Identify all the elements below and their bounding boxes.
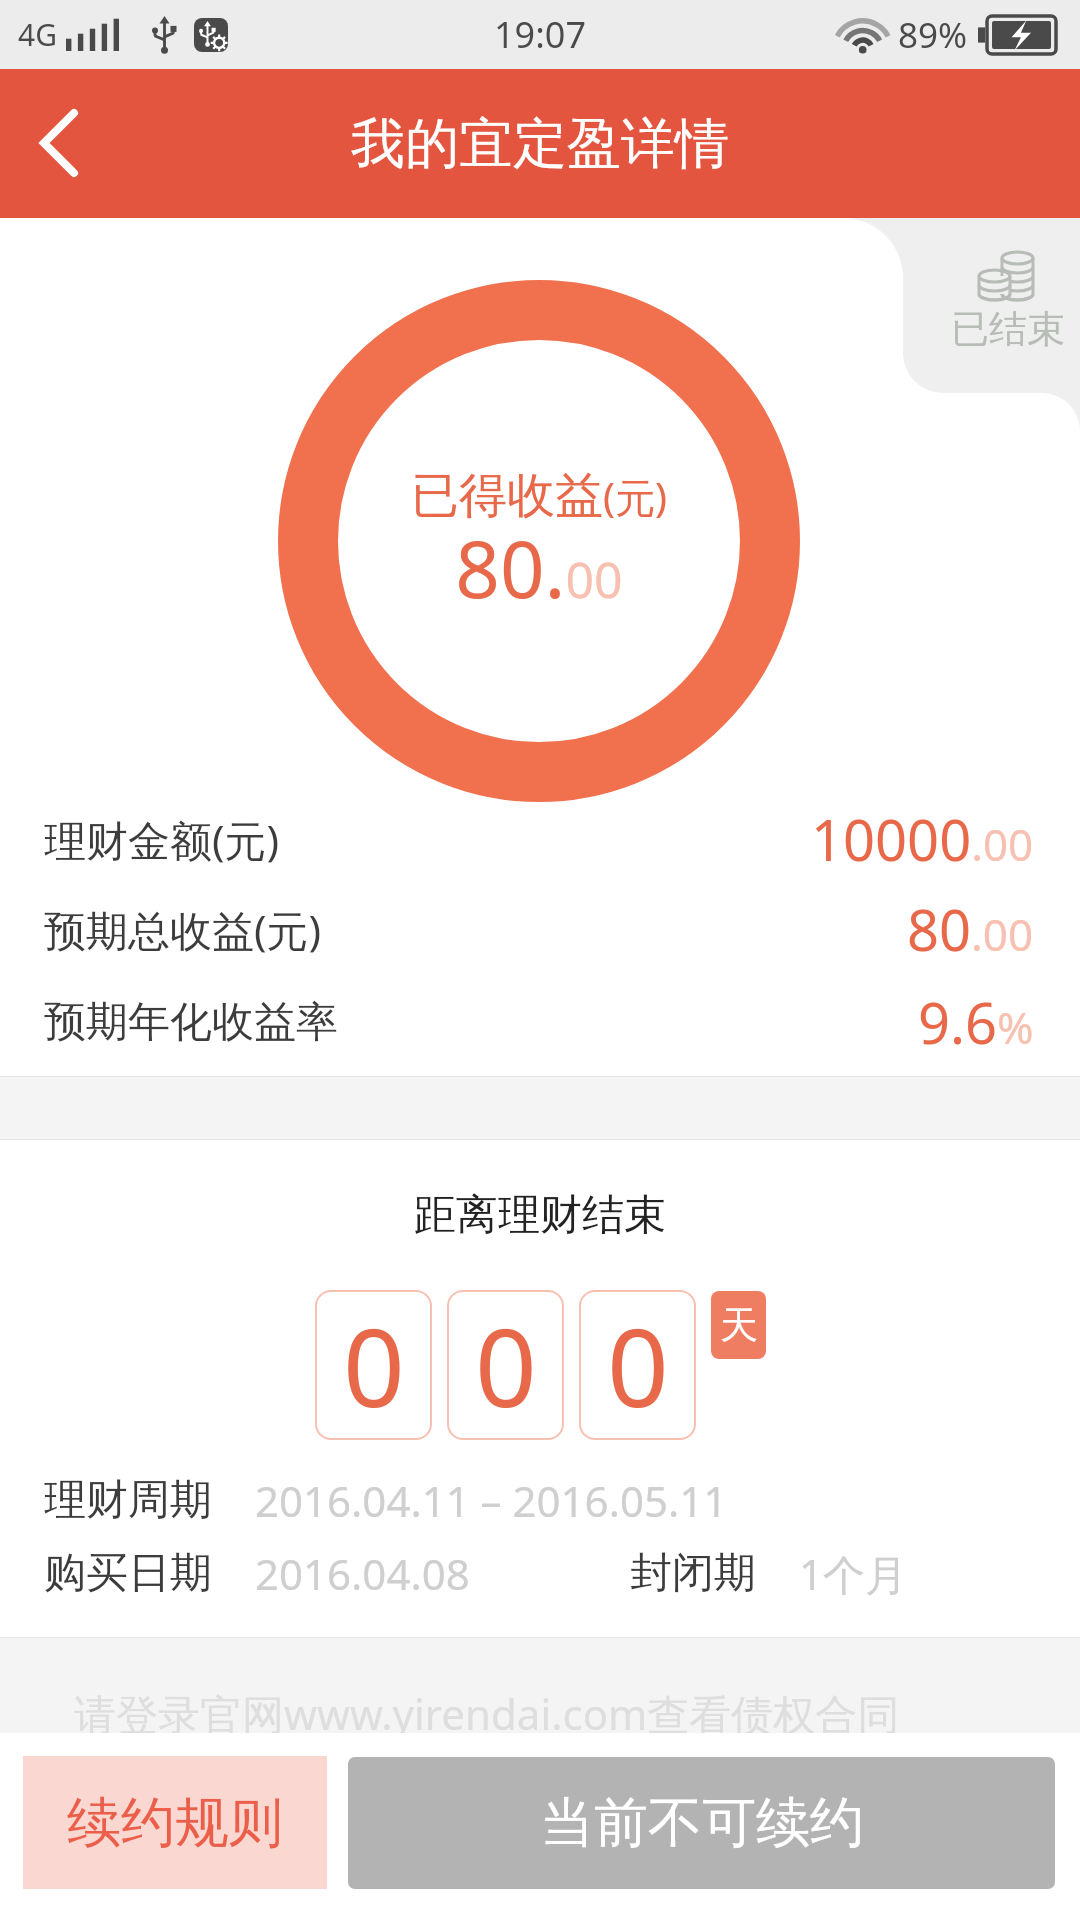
staticText: 0 — [607, 1292, 669, 1439]
staticText: 0 — [475, 1292, 537, 1439]
staticText: 9.6% — [918, 984, 1034, 1060]
staticText: 购买日期 — [44, 1547, 212, 1600]
staticText: 天 — [720, 1301, 758, 1349]
staticText: 10000.00 — [811, 801, 1034, 877]
staticText: 89% — [898, 11, 968, 59]
staticText: 预期总收益(元) — [44, 901, 322, 958]
staticText: 0 — [343, 1292, 405, 1439]
button[interactable]: 当前不可续约 — [348, 1757, 1055, 1889]
staticText: 已得收益(元) — [278, 466, 800, 526]
staticText: 2016.04.08 — [255, 1545, 470, 1602]
staticText: 距离理财结束 — [0, 1189, 1080, 1242]
staticText: 理财金额(元) — [44, 811, 280, 868]
staticText: 预期年化收益率 — [44, 996, 338, 1049]
staticText: 续约规则 — [67, 1789, 283, 1857]
staticText: 已结束 — [951, 305, 1065, 353]
staticText: 2016.04.11 – 2016.05.11 — [255, 1472, 728, 1529]
staticText: 80.00 — [907, 891, 1034, 967]
staticText: 理财周期 — [44, 1474, 212, 1527]
button[interactable]: Back — [0, 69, 118, 218]
staticText: 19:07 — [494, 10, 587, 59]
staticText: 封闭期 — [630, 1547, 756, 1600]
button[interactable]: 续约规则 — [23, 1756, 327, 1889]
staticText: 80.00 — [278, 515, 800, 621]
staticText: 我的宜定盈详情 — [351, 110, 729, 178]
staticText: 请登录官网www.yirendai.com查看债权合同 — [74, 1685, 900, 1733]
staticText: 当前不可续约 — [540, 1789, 864, 1857]
staticText: 1个月 — [799, 1545, 908, 1602]
staticText: 4G — [18, 14, 57, 55]
